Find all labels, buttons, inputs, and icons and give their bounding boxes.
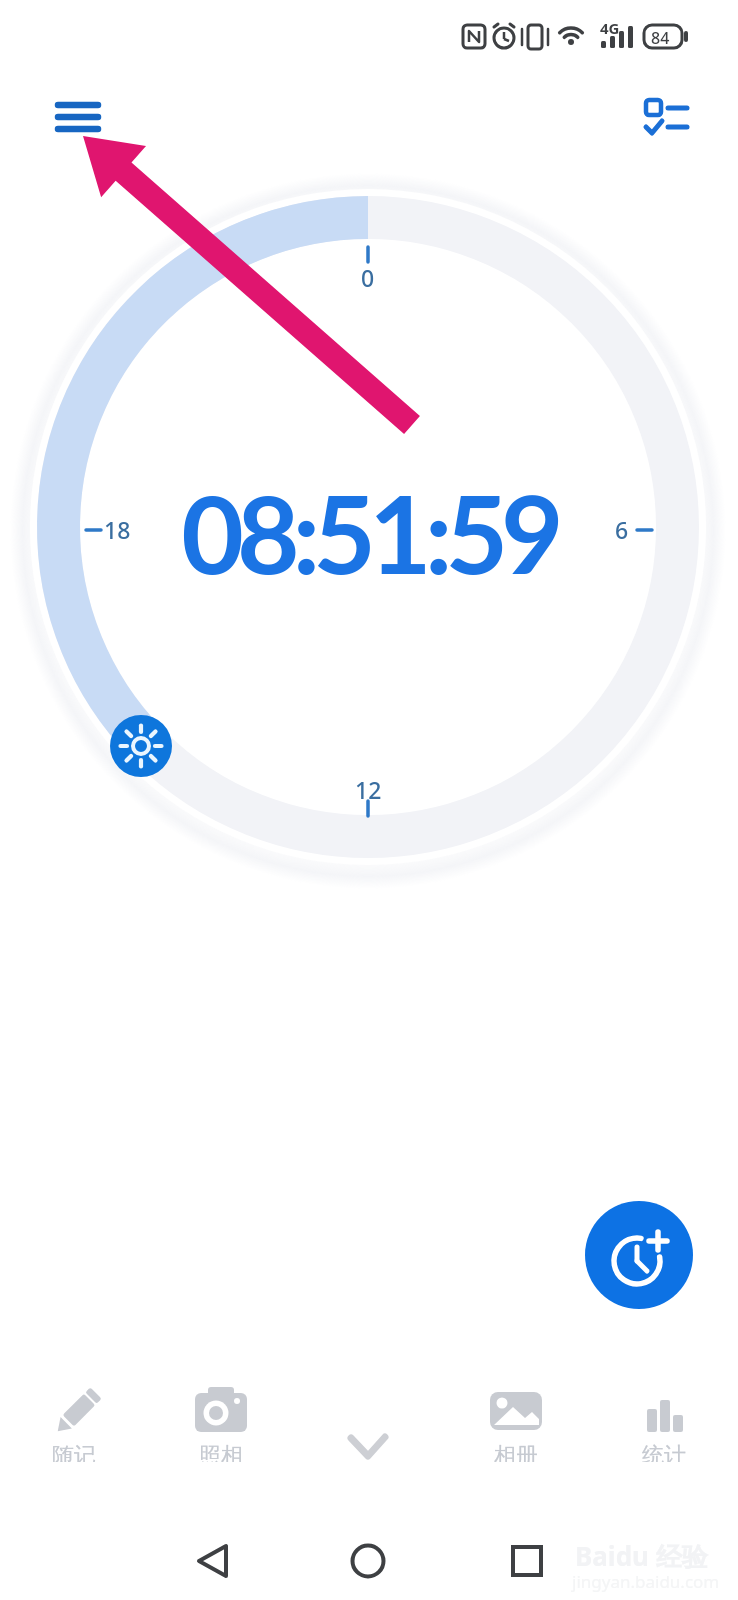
staticText: 4G: [600, 18, 620, 38]
staticText: Baidu 经验: [575, 1538, 708, 1574]
staticText: 12: [355, 774, 382, 804]
staticText: 0: [361, 262, 375, 292]
staticText: 照相: [199, 1442, 243, 1462]
button[interactable]: [180, 1530, 246, 1596]
staticText: 相册: [494, 1442, 538, 1462]
button[interactable]: 随记: [0, 1380, 147, 1470]
staticText: 随记: [52, 1442, 96, 1462]
button[interactable]: 照相: [147, 1380, 294, 1470]
button[interactable]: [48, 92, 108, 144]
staticText: 84: [651, 27, 670, 49]
button[interactable]: [585, 1201, 693, 1309]
button[interactable]: [335, 1530, 401, 1596]
button[interactable]: [494, 1530, 560, 1596]
staticText: 18: [104, 514, 131, 544]
staticText: 08:51:59: [181, 467, 557, 597]
staticText: 6: [615, 514, 629, 544]
staticText: jingyan.baidu.com: [572, 1570, 720, 1593]
button[interactable]: [636, 90, 696, 144]
staticText: 统计: [642, 1442, 686, 1462]
button[interactable]: 相册: [442, 1380, 590, 1470]
button[interactable]: 统计: [590, 1380, 738, 1470]
button[interactable]: [110, 715, 172, 777]
button[interactable]: [294, 1380, 442, 1470]
